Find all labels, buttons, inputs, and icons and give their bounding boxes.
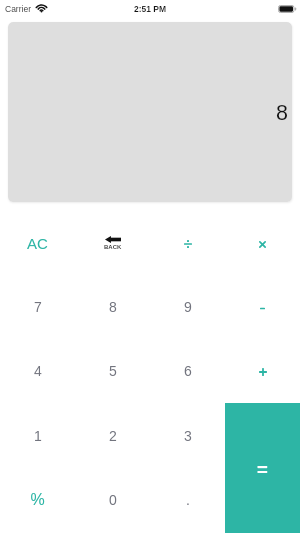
staticText: 5 xyxy=(109,363,117,379)
button[interactable]: 0 xyxy=(75,467,150,531)
button[interactable]: 2 xyxy=(75,403,150,467)
button[interactable]: = xyxy=(225,403,300,533)
button[interactable]: 9 xyxy=(150,274,225,338)
staticText: 8 xyxy=(276,101,288,125)
button[interactable]: 6 xyxy=(150,338,225,402)
staticText: 2 xyxy=(109,428,117,444)
staticText: . xyxy=(186,492,190,508)
staticText: % xyxy=(30,491,45,509)
button[interactable]: 4 xyxy=(0,338,75,402)
staticText: 4 xyxy=(34,363,42,379)
button[interactable]: 7 xyxy=(0,274,75,338)
staticText: AC xyxy=(27,235,48,252)
button[interactable] xyxy=(225,210,300,274)
staticText: 9 xyxy=(184,299,192,315)
button[interactable]: 5 xyxy=(75,338,150,402)
staticText: 3 xyxy=(184,428,192,444)
button[interactable]: % xyxy=(0,467,75,531)
staticText: Carrier xyxy=(5,4,31,13)
staticText: 8 xyxy=(109,299,117,315)
staticText: 1 xyxy=(34,428,42,444)
button[interactable]: Backspace xyxy=(75,210,150,274)
staticText: 6 xyxy=(184,363,192,379)
button[interactable]: 3 xyxy=(150,403,225,467)
button[interactable]: 8 xyxy=(75,274,150,338)
button[interactable]: 1 xyxy=(0,403,75,467)
staticText: 7 xyxy=(34,299,42,315)
button[interactable] xyxy=(225,338,300,402)
staticText: = xyxy=(257,459,268,480)
button[interactable] xyxy=(150,210,225,274)
button[interactable]: AC xyxy=(0,210,75,274)
staticText: 0 xyxy=(109,492,117,508)
button[interactable] xyxy=(225,274,300,338)
staticText: 2:51 PM xyxy=(134,4,167,13)
staticText: BACK xyxy=(104,244,122,251)
